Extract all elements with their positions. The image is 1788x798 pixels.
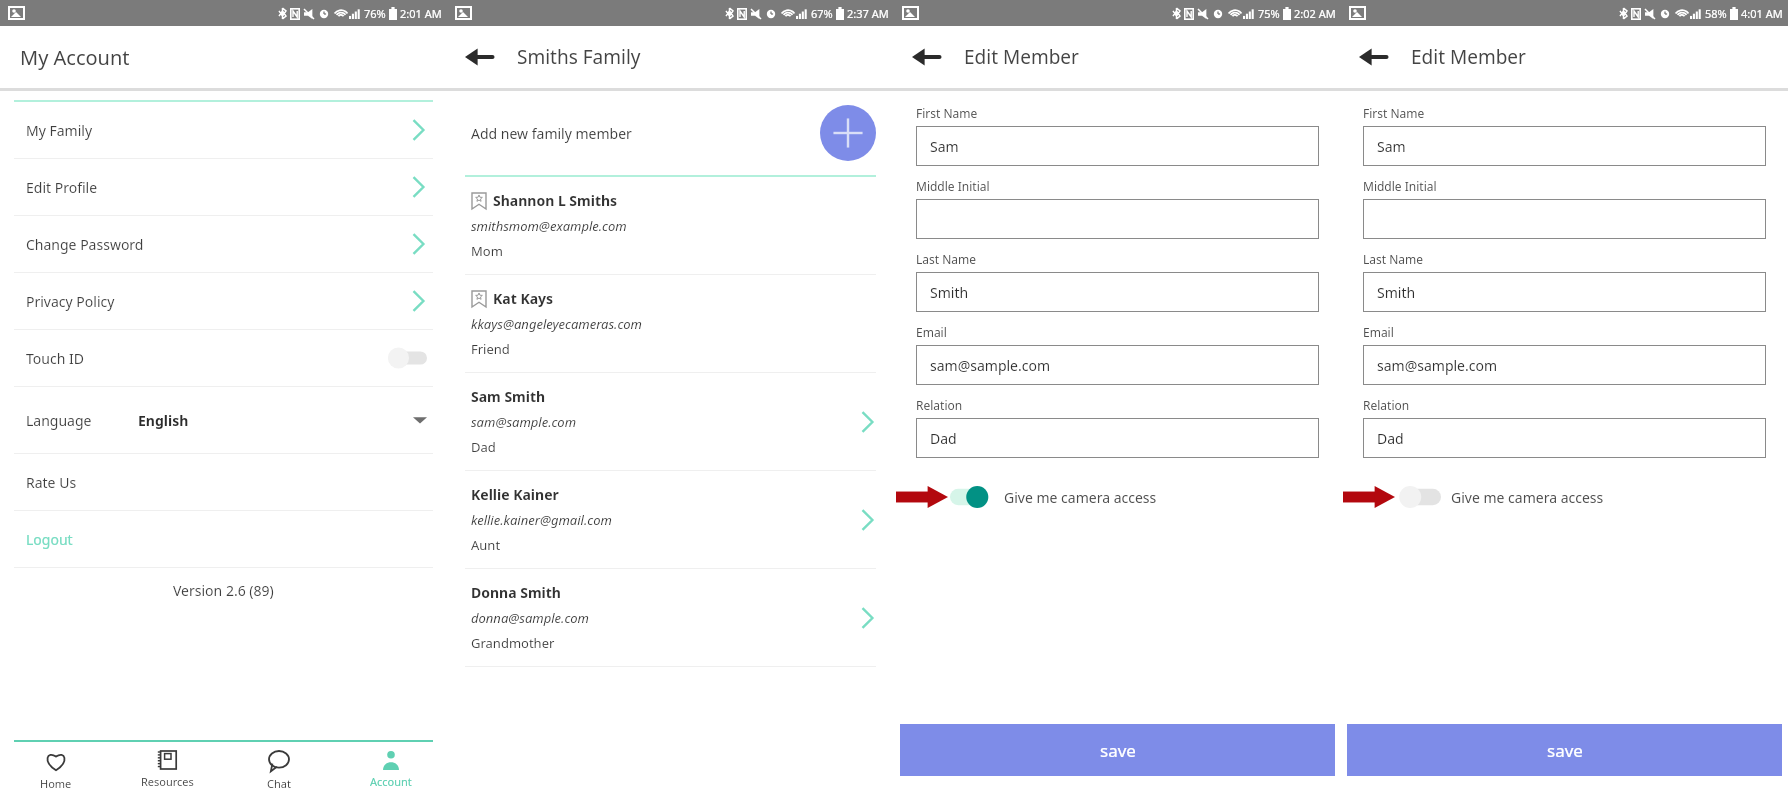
staticText: Account bbox=[370, 774, 412, 789]
staticText: My Account bbox=[20, 44, 130, 71]
button[interactable]: Sam bbox=[916, 126, 1319, 166]
staticText: First Name bbox=[916, 105, 978, 121]
staticText: smithsmom@example.com bbox=[471, 217, 627, 235]
staticText: Sam bbox=[1377, 137, 1406, 156]
staticText: Email bbox=[1363, 324, 1394, 340]
staticText: kkays@angeleyecameras.com bbox=[471, 315, 642, 333]
staticText: Friend bbox=[471, 340, 510, 358]
staticText: Smith bbox=[930, 283, 969, 302]
button[interactable]: Dad bbox=[916, 418, 1319, 458]
staticText: 2:37 AM bbox=[847, 6, 889, 21]
staticText: Dad bbox=[1377, 429, 1404, 448]
staticText: Edit Profile bbox=[26, 178, 98, 197]
button[interactable]: sam@sample.com bbox=[916, 345, 1319, 385]
staticText: Chat bbox=[267, 776, 291, 791]
staticText: 2:01 AM bbox=[400, 6, 442, 21]
button[interactable]: Smith bbox=[916, 272, 1319, 312]
button[interactable]: Smith bbox=[1363, 272, 1766, 312]
button[interactable]: Kellie Kainer bbox=[447, 471, 894, 568]
staticText: 75% bbox=[1258, 6, 1280, 21]
staticText: Last Name bbox=[916, 251, 977, 267]
staticText: Shannon L Smiths bbox=[493, 191, 618, 210]
button[interactable]: save bbox=[1347, 724, 1782, 776]
button[interactable]: Sam Smith bbox=[447, 373, 894, 470]
button[interactable] bbox=[1363, 199, 1766, 239]
staticText: Smiths Family bbox=[517, 44, 641, 70]
staticText: donna@sample.com bbox=[471, 609, 589, 627]
button[interactable]: Touch ID bbox=[0, 330, 447, 386]
staticText: My Family bbox=[26, 121, 93, 140]
staticText: Resources bbox=[141, 774, 194, 789]
staticText: 2:02 AM bbox=[1294, 6, 1336, 21]
button[interactable]: Add new family member bbox=[447, 91, 894, 175]
button[interactable]: Dad bbox=[1363, 418, 1766, 458]
button[interactable]: Resources bbox=[111, 742, 223, 798]
staticText: Edit Member bbox=[964, 44, 1079, 70]
staticText: English bbox=[138, 411, 189, 430]
staticText: Middle Initial bbox=[916, 178, 990, 194]
staticText: Aunt bbox=[471, 536, 501, 554]
staticText: Rate Us bbox=[26, 473, 77, 492]
staticText: Sam bbox=[930, 137, 959, 156]
staticText: 4:01 AM bbox=[1741, 6, 1783, 21]
button[interactable]: Change Password bbox=[0, 216, 447, 272]
button[interactable]: Donna Smith bbox=[447, 569, 894, 666]
staticText: sam@sample.com bbox=[471, 413, 577, 431]
staticText: Donna Smith bbox=[471, 583, 561, 602]
staticText: Dad bbox=[930, 429, 957, 448]
staticText: First Name bbox=[1363, 105, 1425, 121]
staticText: 67% bbox=[811, 6, 833, 21]
staticText: Home bbox=[40, 776, 72, 791]
button[interactable]: Home bbox=[0, 742, 111, 798]
staticText: Sam Smith bbox=[471, 387, 546, 406]
staticText: Mom bbox=[471, 242, 503, 260]
staticText: Language bbox=[26, 411, 92, 430]
button[interactable]: sam@sample.com bbox=[1363, 345, 1766, 385]
button[interactable]: Back bbox=[457, 35, 501, 79]
button[interactable]: Rate Us bbox=[0, 454, 447, 510]
staticText: 58% bbox=[1705, 6, 1727, 21]
staticText: Kat Kays bbox=[493, 289, 554, 308]
staticText: kellie.kainer@gmail.com bbox=[471, 511, 612, 529]
staticText: Add new family member bbox=[471, 124, 632, 143]
button[interactable]: save bbox=[900, 724, 1335, 776]
button[interactable]: My Family bbox=[0, 102, 447, 158]
button[interactable]: Shannon L Smiths bbox=[447, 177, 894, 274]
button[interactable]: Chat bbox=[223, 742, 335, 798]
staticText: Logout bbox=[26, 530, 73, 549]
staticText: Dad bbox=[471, 438, 496, 456]
staticText: Relation bbox=[916, 397, 963, 413]
staticText: Middle Initial bbox=[1363, 178, 1437, 194]
button[interactable]: Give me camera access bbox=[894, 478, 1341, 516]
staticText: Version 2.6 (89) bbox=[173, 581, 274, 600]
button[interactable]: Privacy Policy bbox=[0, 273, 447, 329]
staticText: Touch ID bbox=[26, 349, 84, 368]
staticText: Last Name bbox=[1363, 251, 1424, 267]
button[interactable]: Logout bbox=[0, 511, 447, 567]
staticText: sam@sample.com bbox=[930, 356, 1051, 375]
button[interactable]: Account bbox=[335, 742, 447, 798]
button[interactable]: Language bbox=[0, 387, 447, 453]
staticText: Privacy Policy bbox=[26, 292, 115, 311]
button[interactable]: Give me camera access bbox=[1341, 478, 1788, 516]
button[interactable]: Sam bbox=[1363, 126, 1766, 166]
staticText: Give me camera access bbox=[1451, 488, 1604, 507]
staticText: save bbox=[1547, 739, 1583, 762]
button[interactable]: Edit Profile bbox=[0, 159, 447, 215]
staticText: Relation bbox=[1363, 397, 1410, 413]
other: Add bbox=[820, 105, 876, 161]
button[interactable]: Kat Kays bbox=[447, 275, 894, 372]
staticText: Give me camera access bbox=[1004, 488, 1157, 507]
button[interactable] bbox=[916, 199, 1319, 239]
staticText: Change Password bbox=[26, 235, 144, 254]
staticText: Edit Member bbox=[1411, 44, 1526, 70]
button[interactable]: Back bbox=[904, 35, 948, 79]
staticText: sam@sample.com bbox=[1377, 356, 1498, 375]
staticText: Smith bbox=[1377, 283, 1416, 302]
staticText: Email bbox=[916, 324, 947, 340]
staticText: save bbox=[1100, 739, 1136, 762]
staticText: 76% bbox=[364, 6, 386, 21]
staticText: Kellie Kainer bbox=[471, 485, 559, 504]
button[interactable]: Back bbox=[1351, 35, 1395, 79]
staticText: Grandmother bbox=[471, 634, 555, 652]
